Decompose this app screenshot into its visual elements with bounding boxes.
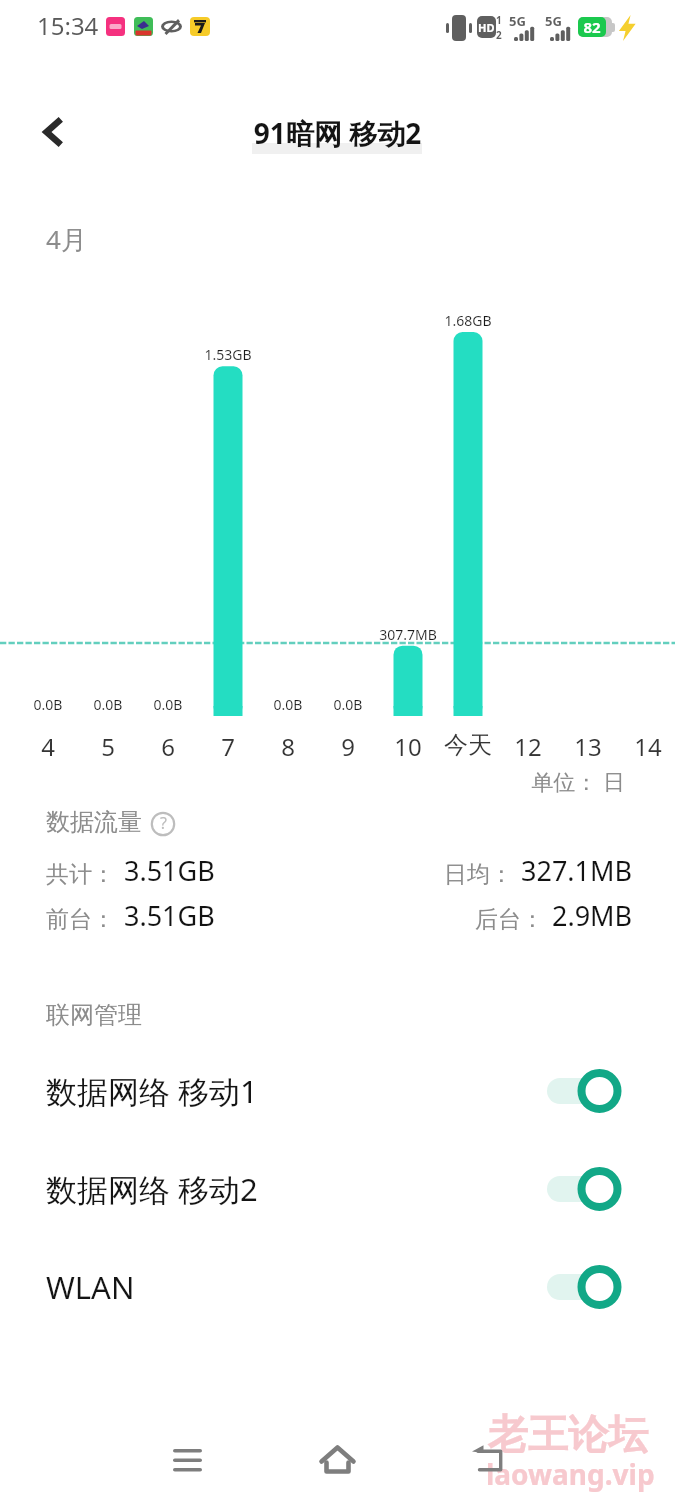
staticText: 7 — [188, 730, 268, 763]
staticText: 9 — [308, 730, 388, 763]
staticText: 307.7MB — [348, 625, 468, 644]
staticText: 12 — [488, 730, 568, 763]
staticText: 日均： — [444, 860, 513, 889]
button[interactable]: Back — [456, 1428, 520, 1492]
button[interactable]: WLAN — [0, 1254, 675, 1320]
staticText: 13 — [548, 730, 628, 763]
staticText: 0.0B — [48, 695, 168, 714]
staticText: 5G — [545, 12, 562, 30]
staticText: 91暗网 移动2 — [0, 114, 675, 152]
staticText: 6 — [128, 730, 208, 763]
staticText: 82 — [578, 17, 606, 37]
staticText: WLAN — [46, 1266, 135, 1308]
staticText: 联网管理 — [46, 1000, 142, 1030]
staticText: 1.53GB — [168, 345, 288, 364]
button[interactable]: Toggle WLAN — [547, 1264, 629, 1310]
staticText: 0.0B — [228, 695, 348, 714]
staticText: 1 — [496, 13, 502, 27]
staticText: 共计： — [46, 860, 115, 889]
staticText: 2 — [496, 28, 502, 42]
button[interactable]: 数据网络 移动2 — [0, 1156, 675, 1222]
staticText: 3.51GB — [124, 852, 215, 889]
staticText: 老王论坛 — [488, 1409, 648, 1459]
staticText: 单位： 日 — [0, 766, 625, 796]
staticText: 数据流量 — [46, 807, 142, 837]
button[interactable]: Back — [20, 98, 88, 166]
staticText: 2.9MB — [552, 897, 633, 934]
staticText: 14 — [608, 730, 675, 763]
staticText: 4 — [8, 730, 88, 763]
staticText: 10 — [368, 730, 448, 763]
staticText: 5G — [509, 12, 526, 30]
button[interactable]: Toggle 数据网络 移动1 — [547, 1068, 629, 1114]
button[interactable]: Home — [305, 1428, 369, 1492]
staticText: 0.0B — [108, 695, 228, 714]
staticText: 数据网络 移动2 — [46, 1168, 258, 1210]
staticText: 0.0B — [0, 695, 108, 714]
staticText: 3.51GB — [124, 897, 215, 934]
staticText: 5 — [68, 730, 148, 763]
button[interactable]: Help about data usage — [149, 808, 177, 836]
staticText: 1.68GB — [408, 311, 528, 330]
staticText: ? — [160, 812, 167, 834]
staticText: 0.0B — [288, 695, 408, 714]
staticText: 后台： — [475, 905, 544, 934]
staticText: 8 — [248, 730, 328, 763]
button[interactable]: Recent apps — [155, 1428, 219, 1492]
staticText: laowang.vip — [486, 1455, 655, 1493]
staticText: 15:34 — [37, 9, 99, 42]
staticText: 今天 — [428, 730, 508, 760]
staticText: 327.1MB — [521, 852, 633, 889]
staticText: 前台： — [46, 905, 115, 934]
staticText: 4月 — [46, 221, 87, 257]
button[interactable]: Toggle 数据网络 移动2 — [547, 1166, 629, 1212]
button[interactable]: 数据网络 移动1 — [0, 1058, 675, 1124]
staticText: 数据网络 移动1 — [46, 1070, 258, 1112]
staticText: HD — [478, 20, 495, 35]
